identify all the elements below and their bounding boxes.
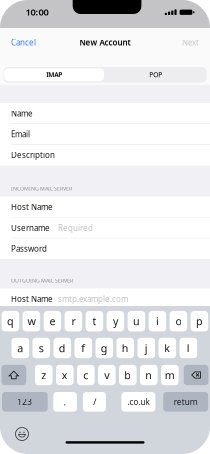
staticText: v <box>104 368 109 382</box>
staticText: g <box>101 341 108 355</box>
button[interactable]: o <box>170 311 187 331</box>
staticText: o <box>175 314 181 328</box>
button[interactable]: Delete <box>184 365 208 385</box>
button[interactable]: w <box>23 311 40 331</box>
button[interactable]: Email <box>0 124 210 145</box>
button[interactable]: h <box>116 338 134 358</box>
staticText: e <box>49 314 55 328</box>
button[interactable]: Shift <box>1 365 26 385</box>
button[interactable]: Cancel <box>0 28 42 57</box>
button[interactable]: .co.uk <box>121 392 155 412</box>
button[interactable]: q <box>2 311 19 331</box>
button[interactable]: r <box>65 311 82 331</box>
staticText: POP <box>149 70 162 79</box>
button[interactable]: y <box>107 311 124 331</box>
button[interactable]: f <box>74 338 92 358</box>
button[interactable]: k <box>158 338 176 358</box>
button[interactable]: c <box>77 365 95 385</box>
button[interactable]: x <box>56 365 74 385</box>
staticText: Name <box>11 108 33 119</box>
staticText: c <box>83 368 88 382</box>
button[interactable]: b <box>119 365 137 385</box>
staticText: Username <box>11 222 50 233</box>
staticText: / <box>93 396 96 408</box>
staticText: h <box>122 341 129 355</box>
button[interactable]: p <box>191 311 208 331</box>
button[interactable]: u <box>128 311 145 331</box>
staticText: d <box>59 341 66 355</box>
staticText: . <box>64 396 67 408</box>
staticText: s <box>39 341 44 355</box>
button[interactable]: Description <box>0 145 210 165</box>
button[interactable]: Host Name <box>0 197 210 217</box>
button[interactable]: s <box>32 338 50 358</box>
button[interactable]: return <box>163 392 208 412</box>
staticText: i <box>156 314 159 328</box>
staticText: Email <box>11 129 30 139</box>
button[interactable]: Password <box>0 238 210 259</box>
button[interactable]: l <box>179 338 197 358</box>
button[interactable]: e <box>44 311 61 331</box>
staticText: t <box>92 314 96 328</box>
button[interactable]: g <box>95 338 113 358</box>
staticText: x <box>62 368 68 382</box>
staticText: smtp.example.com <box>58 294 128 304</box>
staticText: a <box>17 341 23 355</box>
staticText: n <box>145 368 152 382</box>
staticText: INCOMING MAIL SERVER <box>11 185 72 192</box>
staticText: u <box>133 314 140 328</box>
staticText: 10:00 <box>26 6 49 18</box>
staticText: return <box>174 396 198 407</box>
button[interactable]: Emoji keyboard <box>15 427 28 440</box>
staticText: j <box>145 341 148 355</box>
staticText: Next <box>182 37 199 48</box>
staticText: 123 <box>17 396 32 407</box>
staticText: q <box>7 314 14 328</box>
button[interactable]: 123 <box>2 392 48 412</box>
button[interactable]: Name <box>0 103 210 124</box>
button[interactable]: z <box>35 365 53 385</box>
staticText: p <box>196 314 203 328</box>
staticText: r <box>71 314 75 328</box>
staticText: IMAP <box>46 70 62 79</box>
button[interactable]: m <box>161 365 179 385</box>
button[interactable]: i <box>149 311 166 331</box>
staticText: Host Name <box>11 202 53 212</box>
staticText: Password <box>11 243 47 254</box>
button[interactable]: IMAP <box>3 67 105 82</box>
button[interactable]: d <box>53 338 71 358</box>
button[interactable]: j <box>137 338 155 358</box>
staticText: Cancel <box>11 37 36 48</box>
button[interactable]: / <box>83 392 106 412</box>
button[interactable]: a <box>11 338 29 358</box>
staticText: y <box>113 314 118 328</box>
button[interactable]: POP <box>105 67 206 82</box>
staticText: f <box>81 341 85 355</box>
staticText: .co.uk <box>127 396 149 407</box>
staticText: OUTGOING MAIL SERVER <box>11 277 73 284</box>
button[interactable]: Host Name <box>0 289 210 309</box>
staticText: l <box>187 341 190 355</box>
staticText: m <box>165 368 175 382</box>
button[interactable]: . <box>53 392 77 412</box>
button[interactable]: t <box>86 311 103 331</box>
staticText: z <box>41 368 46 382</box>
staticText: Required <box>58 222 93 233</box>
button[interactable]: n <box>140 365 158 385</box>
staticText: w <box>27 314 35 328</box>
button[interactable]: Next <box>176 28 210 57</box>
button[interactable]: Username <box>0 217 210 238</box>
button[interactable]: v <box>98 365 116 385</box>
staticText: Host Name <box>11 294 53 304</box>
staticText: b <box>124 368 131 382</box>
staticText: k <box>164 341 170 355</box>
staticText: New Account <box>79 37 130 48</box>
staticText: Description <box>11 150 55 160</box>
